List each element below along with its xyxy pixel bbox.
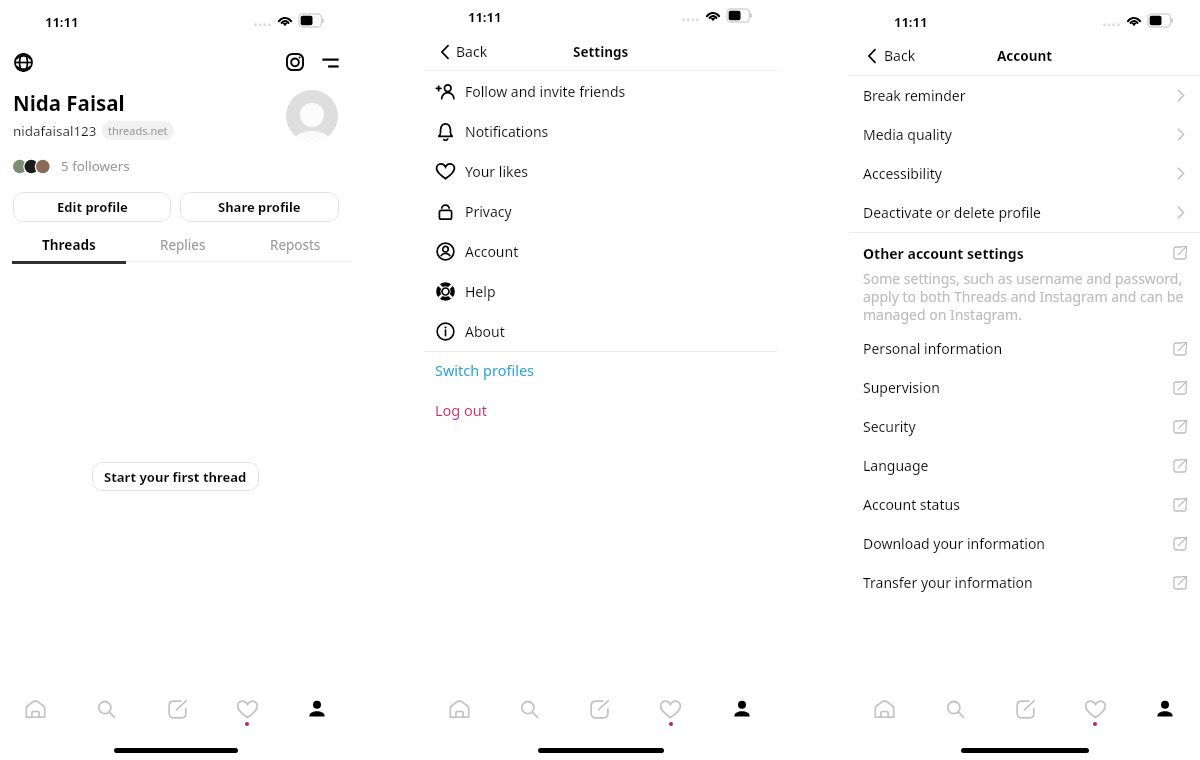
staticText: 11:11 (45, 13, 79, 31)
staticText: Transfer your information (863, 573, 1173, 592)
button[interactable]: Other account settings (849, 237, 1200, 269)
button[interactable]: Back (436, 37, 493, 66)
button[interactable]: Activity (635, 686, 706, 732)
button[interactable]: Download your information (849, 524, 1200, 563)
button[interactable]: Activity (1060, 686, 1130, 732)
staticText: Supervision (863, 378, 1173, 397)
button[interactable]: Compose (564, 686, 635, 732)
button[interactable]: Notifications (424, 111, 777, 151)
button[interactable]: Privacy (424, 191, 777, 231)
button[interactable]: Language (849, 446, 1200, 485)
staticText: Reposts (270, 236, 321, 254)
button[interactable]: Profile photo (286, 90, 338, 142)
button[interactable]: Transfer your information (849, 563, 1200, 602)
button[interactable]: Home (0, 686, 71, 732)
staticText: Start your first thread (104, 468, 247, 486)
staticText: Nida Faisal (13, 89, 125, 117)
staticText: Deactivate or delete profile (863, 203, 1178, 222)
staticText: Language (863, 456, 1173, 475)
button[interactable]: Search (920, 686, 990, 732)
button[interactable]: Profile (282, 686, 352, 732)
staticText: Account (997, 47, 1053, 65)
staticText: Account (465, 242, 519, 261)
staticText: Back (456, 42, 488, 61)
button[interactable]: Media quality (849, 115, 1200, 154)
staticText: Accessibility (863, 164, 1178, 183)
button[interactable]: Follow and invite friends (424, 71, 777, 111)
staticText: Account status (863, 495, 1173, 514)
button[interactable]: Profile (1130, 686, 1200, 732)
staticText: Replies (160, 236, 206, 254)
button[interactable]: Help (424, 271, 777, 311)
button[interactable]: Start your first thread (92, 462, 259, 491)
staticText: Share profile (218, 198, 301, 216)
staticText: Download your information (863, 534, 1173, 553)
button[interactable]: Log out (424, 388, 777, 432)
button[interactable]: Activity (212, 686, 282, 732)
button[interactable]: Back (863, 41, 921, 70)
button[interactable]: Accessibility (849, 154, 1200, 193)
staticText: Break reminder (863, 86, 1178, 105)
button[interactable]: Home (849, 686, 920, 732)
staticText: About (465, 322, 505, 341)
staticText: 11:11 (468, 8, 502, 26)
button[interactable]: Profile (706, 686, 777, 732)
staticText: Back (884, 46, 916, 65)
button[interactable]: Switch profiles (424, 352, 777, 388)
button[interactable]: Account (424, 231, 777, 271)
staticText: Threads (42, 236, 96, 254)
button[interactable]: Edit profile (13, 192, 171, 222)
button[interactable]: Deactivate or delete profile (849, 193, 1200, 232)
button[interactable]: About (424, 311, 777, 351)
staticText: Other account settings (863, 244, 1173, 263)
button[interactable]: Replies (126, 236, 239, 262)
button[interactable]: Security (849, 407, 1200, 446)
button[interactable]: Share profile (180, 192, 339, 222)
staticText: Security (863, 417, 1173, 436)
staticText: 5 followers (61, 157, 130, 175)
staticText: Help (465, 282, 496, 301)
button[interactable]: Your likes (424, 151, 777, 191)
button[interactable]: Account status (849, 485, 1200, 524)
button[interactable]: Search (71, 686, 142, 732)
staticText: Edit profile (57, 198, 128, 216)
staticText: threads.net (108, 123, 168, 138)
button[interactable]: Menu (316, 48, 344, 76)
button[interactable]: Home (424, 686, 494, 732)
staticText: Notifications (465, 122, 549, 141)
staticText: Some settings, such as username and pass… (863, 269, 1188, 324)
button[interactable]: Threads (12, 236, 126, 264)
staticText: Media quality (863, 125, 1178, 144)
staticText: Your likes (465, 162, 529, 181)
staticText: Follow and invite friends (465, 82, 626, 101)
button[interactable]: Reposts (239, 236, 352, 262)
button[interactable]: Language (9, 48, 37, 76)
button[interactable]: Supervision (849, 368, 1200, 407)
button[interactable]: Compose (990, 686, 1060, 732)
staticText: Personal information (863, 339, 1173, 358)
staticText: Settings (573, 43, 629, 61)
button[interactable]: Compose (142, 686, 212, 732)
button[interactable]: Search (494, 686, 564, 732)
staticText: Switch profiles (435, 360, 535, 380)
button[interactable]: Break reminder (849, 76, 1200, 115)
button[interactable]: Personal information (849, 329, 1200, 368)
staticText: nidafaisal123 (13, 122, 97, 140)
staticText: Privacy (465, 202, 512, 221)
staticText: 11:11 (894, 13, 928, 31)
staticText: Log out (435, 400, 488, 420)
button[interactable]: Instagram (281, 48, 309, 76)
